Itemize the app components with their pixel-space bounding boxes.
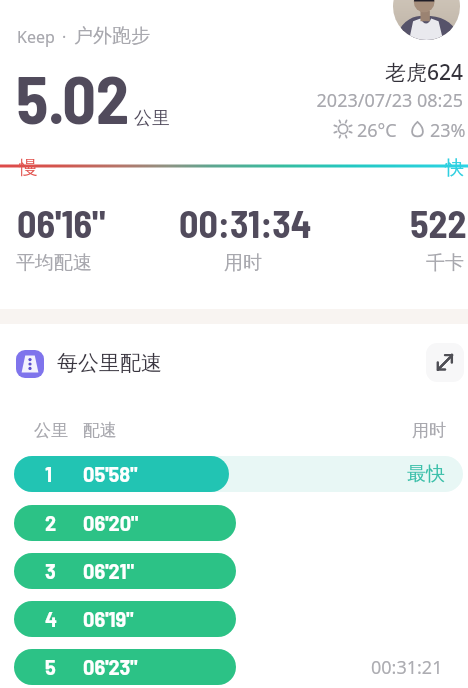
staticText: 1 — [45, 462, 53, 486]
staticText: 5 — [45, 655, 56, 679]
staticText: 2 — [45, 511, 57, 535]
button[interactable]: 4 — [14, 601, 463, 637]
staticText: 4 — [45, 607, 58, 631]
staticText: 用时 — [412, 420, 446, 441]
staticText: 快 — [445, 156, 464, 180]
staticText: 05'58" — [83, 462, 138, 486]
staticText: 06'20" — [83, 511, 139, 535]
button[interactable]: 5 — [14, 649, 463, 685]
staticText: 老虎624 — [0, 58, 463, 87]
staticText: 平均配速 — [16, 251, 92, 275]
staticText: 配速 — [83, 420, 117, 441]
staticText: 每公里配速 — [57, 350, 162, 376]
staticText: 2023/07/23 08:25 — [0, 88, 463, 113]
staticText: 用时 — [224, 251, 262, 275]
button[interactable]: 3 — [14, 553, 463, 589]
staticText: 5.02 — [16, 58, 129, 137]
staticText: 06'21" — [83, 559, 134, 583]
staticText: 公里 — [134, 107, 170, 130]
button[interactable]: Expand chart — [426, 343, 464, 382]
staticText: 23% — [430, 118, 466, 143]
staticText: 最快 — [407, 462, 445, 486]
staticText: · — [62, 26, 67, 48]
staticText: 3 — [45, 559, 56, 583]
staticText: 06'23" — [83, 655, 138, 679]
button[interactable]: Profile avatar — [393, 0, 460, 40]
staticText: 06'16" — [17, 200, 106, 246]
staticText: 522 — [410, 200, 467, 246]
staticText: Keep — [17, 26, 55, 48]
button[interactable]: 1 — [14, 456, 463, 492]
staticText: 户外跑步 — [74, 24, 150, 48]
staticText: 00:31:34 — [179, 200, 312, 246]
staticText: 06'19" — [83, 607, 134, 631]
staticText: 公里 — [34, 420, 68, 441]
button[interactable]: 2 — [14, 505, 463, 541]
staticText: 慢 — [19, 156, 38, 180]
staticText: 26°C — [357, 118, 397, 143]
staticText: 00:31:21 — [371, 655, 443, 680]
staticText: 千卡 — [426, 251, 464, 275]
